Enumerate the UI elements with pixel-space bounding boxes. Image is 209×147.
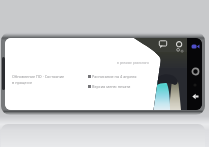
staticText: Обновление ПО · Состояние: [12, 74, 65, 79]
button[interactable]: Версия меню печати: [88, 84, 131, 89]
button[interactable]: Recents: [191, 81, 199, 89]
button[interactable]: Home: [190, 66, 201, 77]
staticText: Версия меню печати: [92, 84, 131, 89]
button[interactable]: Lens: [174, 40, 186, 52]
staticText: Расписание на 4 апреля: [92, 74, 137, 79]
button[interactable]: Video call: [190, 41, 201, 52]
staticText: в процессе: [12, 80, 33, 85]
button[interactable]: Back: [190, 91, 201, 102]
button[interactable]: Расписание на 4 апреля: [88, 74, 137, 79]
button[interactable]: Messages: [158, 40, 169, 51]
staticText: в режиме реального: [117, 61, 149, 65]
